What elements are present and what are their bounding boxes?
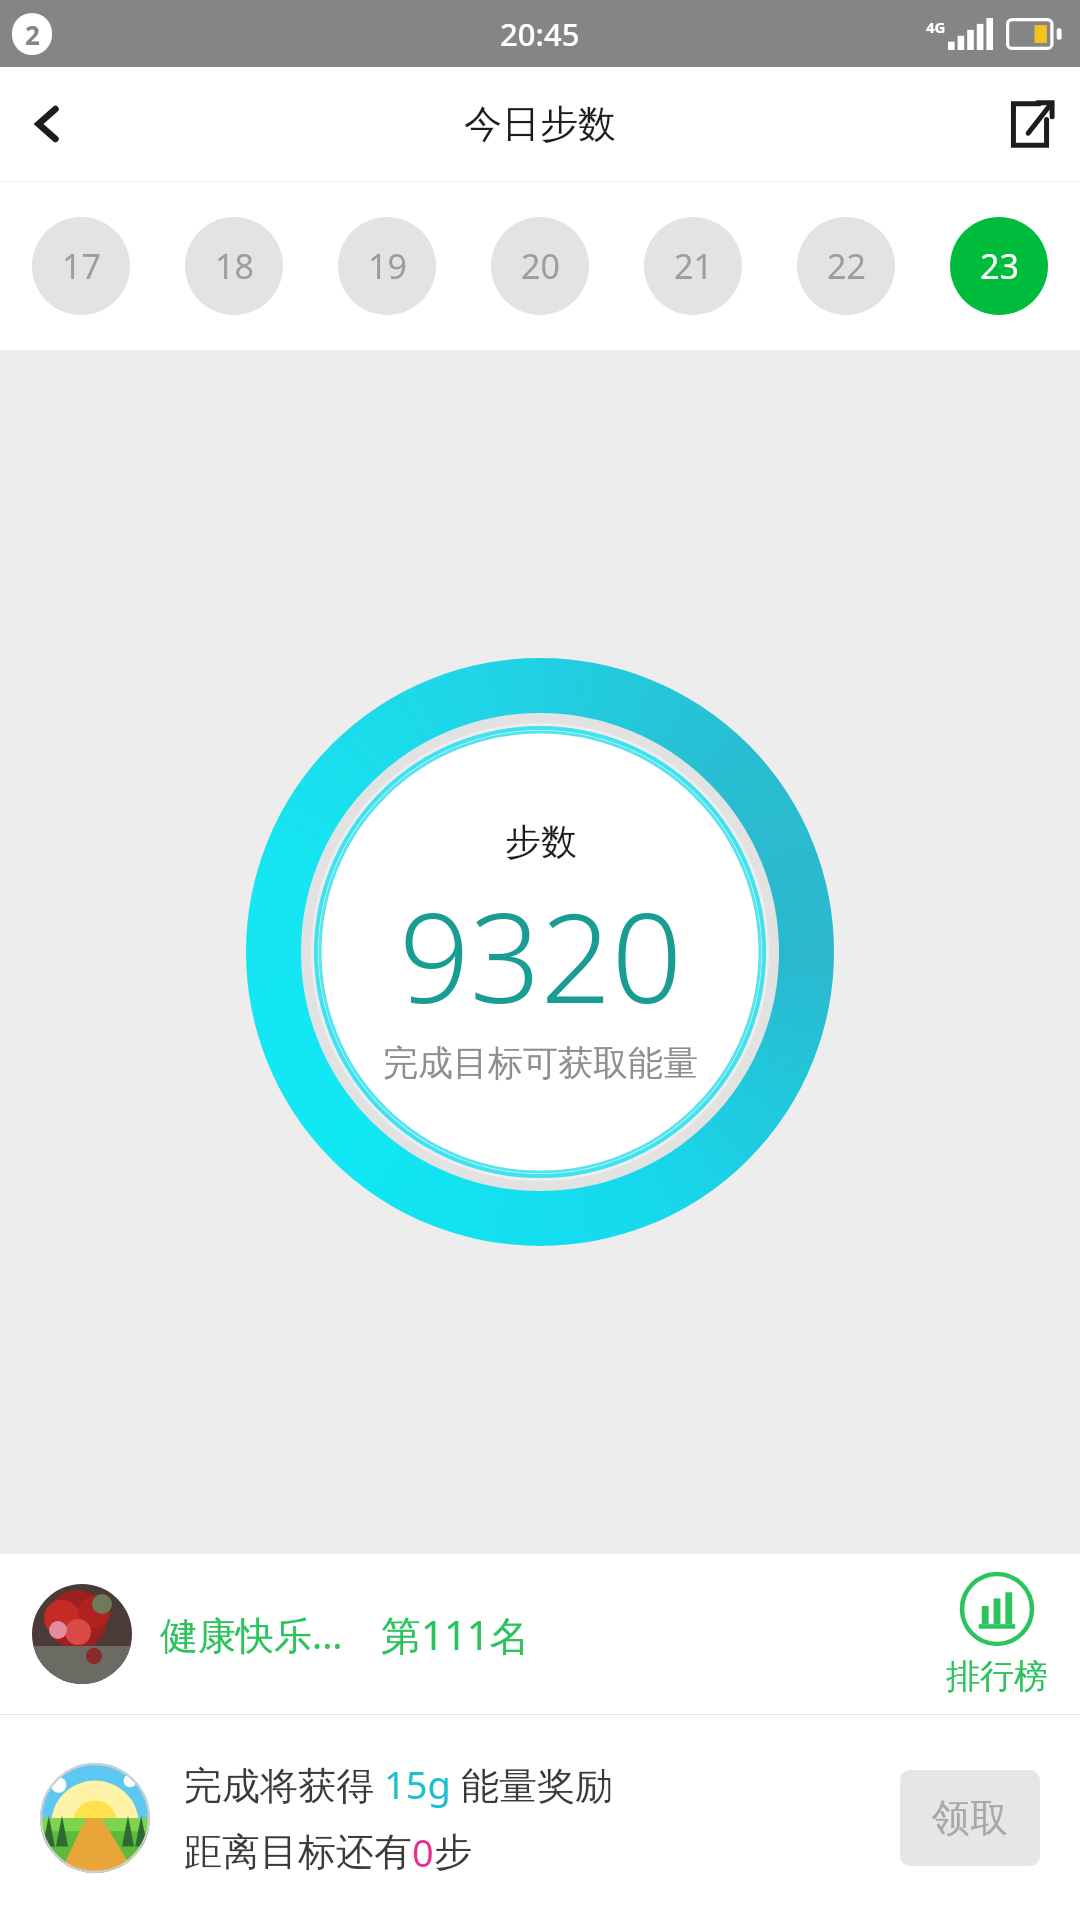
button[interactable]: 完成将获得 <box>0 1715 1080 1920</box>
staticText: 0 <box>412 1826 434 1878</box>
staticText: 20:45 <box>500 13 580 55</box>
button[interactable]: Back <box>0 76 96 172</box>
staticText: 21 <box>674 243 713 289</box>
button[interactable]: 17 <box>32 217 130 315</box>
staticText: 领取 <box>932 1794 1008 1842</box>
button[interactable]: 18 <box>185 217 283 315</box>
staticText: 20 <box>521 243 560 289</box>
staticText: 完成目标可获取能量 <box>383 1041 698 1085</box>
staticText: 15g <box>384 1758 451 1810</box>
button[interactable]: Share <box>980 74 1080 174</box>
staticText: 完成将获得 <box>184 1758 384 1810</box>
button[interactable]: 排行榜 <box>946 1571 1048 1698</box>
button[interactable]: 领取 <box>900 1770 1040 1866</box>
staticText: 步数 <box>505 819 577 864</box>
staticText: 18 <box>215 243 254 289</box>
button[interactable]: 21 <box>644 217 742 315</box>
staticText: 4G <box>926 17 946 37</box>
button[interactable]: 健康快乐... <box>0 1554 1080 1714</box>
staticText: 2 <box>25 17 40 52</box>
staticText: 健康快乐... <box>160 1608 343 1660</box>
staticText: 今日步数 <box>464 100 616 148</box>
button[interactable]: 23 <box>950 217 1048 315</box>
staticText: 22 <box>827 243 866 289</box>
staticText: 步 <box>434 1828 472 1876</box>
button[interactable]: 20 <box>491 217 589 315</box>
staticText: 距离目标还有 <box>184 1828 412 1876</box>
button[interactable]: 19 <box>338 217 436 315</box>
staticText: 9320 <box>399 870 683 1039</box>
staticText: 排行榜 <box>946 1655 1048 1698</box>
staticText: 能量奖励 <box>451 1758 613 1810</box>
staticText: 23 <box>980 243 1019 289</box>
staticText: 19 <box>368 243 407 289</box>
staticText: 17 <box>62 243 101 289</box>
staticText: 第111名 <box>381 1607 530 1662</box>
button[interactable]: 22 <box>797 217 895 315</box>
